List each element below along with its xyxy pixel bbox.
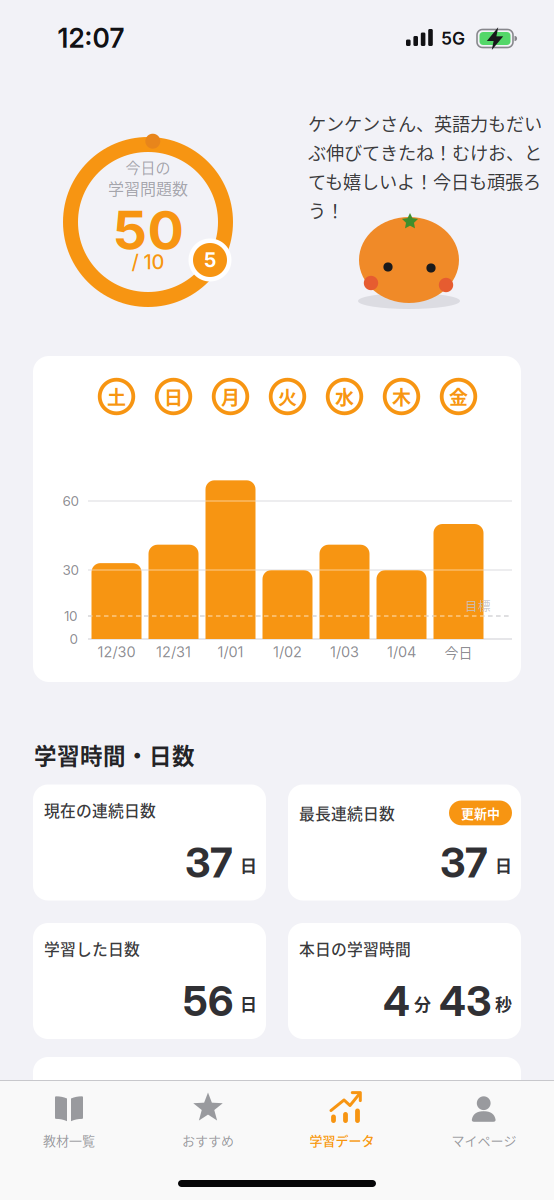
staticText: ケンケンさん、英語力もだい bbox=[308, 110, 542, 136]
staticText: 0 bbox=[69, 631, 78, 647]
staticText: 37 bbox=[440, 838, 488, 887]
staticText: 60 bbox=[62, 493, 79, 509]
staticText: 木 bbox=[392, 383, 411, 410]
staticText: 学習した日数 bbox=[44, 937, 140, 960]
staticText: おすすめ bbox=[182, 1131, 234, 1149]
staticText: 更新中 bbox=[461, 803, 500, 822]
staticText: 日 bbox=[164, 383, 183, 410]
staticText: 学習問題数 bbox=[108, 176, 188, 200]
staticText: 今日の bbox=[125, 156, 170, 178]
staticText: マイページ bbox=[451, 1131, 516, 1149]
staticText: 12/31 bbox=[156, 643, 191, 661]
staticText: 1/02 bbox=[273, 643, 302, 661]
staticText: 土 bbox=[107, 383, 126, 410]
staticText: 日 bbox=[495, 853, 512, 877]
staticText: 目標 bbox=[465, 596, 491, 614]
staticText: 秒 bbox=[495, 991, 512, 1016]
staticText: 学習データ bbox=[309, 1131, 374, 1149]
staticText: 4 bbox=[383, 976, 410, 1026]
staticText: 1/03 bbox=[330, 643, 359, 661]
staticText: 最長連続日数 bbox=[299, 801, 395, 824]
staticText: 学習時間・日数 bbox=[34, 738, 195, 771]
staticText: 12/30 bbox=[97, 643, 135, 661]
staticText: 現在の連続日数 bbox=[44, 798, 156, 821]
staticText: 56 bbox=[183, 976, 233, 1026]
staticText: 分 bbox=[414, 991, 431, 1016]
staticText: う！ bbox=[308, 197, 344, 223]
staticText: 1/04 bbox=[387, 643, 416, 661]
staticText: 37 bbox=[185, 838, 233, 887]
staticText: ても嬉しいよ！今日も頑張ろ bbox=[308, 168, 541, 194]
staticText: 火 bbox=[278, 383, 297, 410]
staticText: 5 bbox=[204, 248, 216, 272]
staticText: / 10 bbox=[131, 250, 164, 274]
staticText: ぶ伸びてきたね！むけお、と bbox=[308, 139, 542, 165]
staticText: 1/01 bbox=[217, 643, 243, 661]
staticText: 12:07 bbox=[57, 22, 124, 54]
staticText: 日 bbox=[240, 991, 257, 1016]
staticText: 月 bbox=[221, 383, 240, 410]
staticText: 30 bbox=[62, 562, 79, 578]
staticText: 本日の学習時間 bbox=[299, 937, 411, 960]
staticText: 43 bbox=[439, 976, 491, 1026]
staticText: 水 bbox=[335, 383, 354, 410]
staticText: 50 bbox=[112, 197, 183, 263]
staticText: 10 bbox=[64, 608, 78, 624]
staticText: 今日 bbox=[444, 642, 472, 662]
staticText: 日 bbox=[240, 853, 257, 877]
staticText: 5G bbox=[441, 28, 465, 49]
staticText: 金 bbox=[449, 383, 468, 410]
staticText: 教材一覧 bbox=[43, 1131, 95, 1149]
